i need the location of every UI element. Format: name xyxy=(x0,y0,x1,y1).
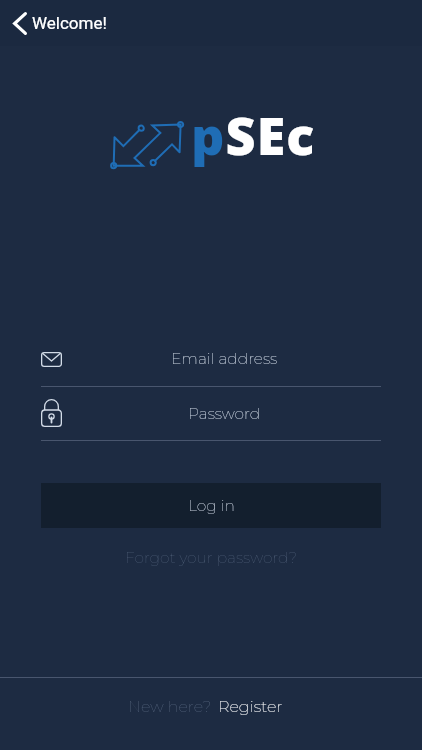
button[interactable]: Register xyxy=(218,697,283,717)
button[interactable]: Email address xyxy=(41,341,381,386)
button[interactable]: Password xyxy=(41,396,381,440)
staticText: Welcome! xyxy=(32,13,107,33)
staticText: Email address xyxy=(171,349,278,368)
staticText: New here? xyxy=(128,697,212,717)
button[interactable]: Back xyxy=(0,0,38,46)
staticText: Log in xyxy=(188,496,235,515)
button[interactable]: Log in xyxy=(41,483,381,528)
button[interactable]: Forgot your password? xyxy=(115,542,308,573)
staticText: pSEc xyxy=(191,99,316,170)
staticText: Password xyxy=(188,404,261,423)
